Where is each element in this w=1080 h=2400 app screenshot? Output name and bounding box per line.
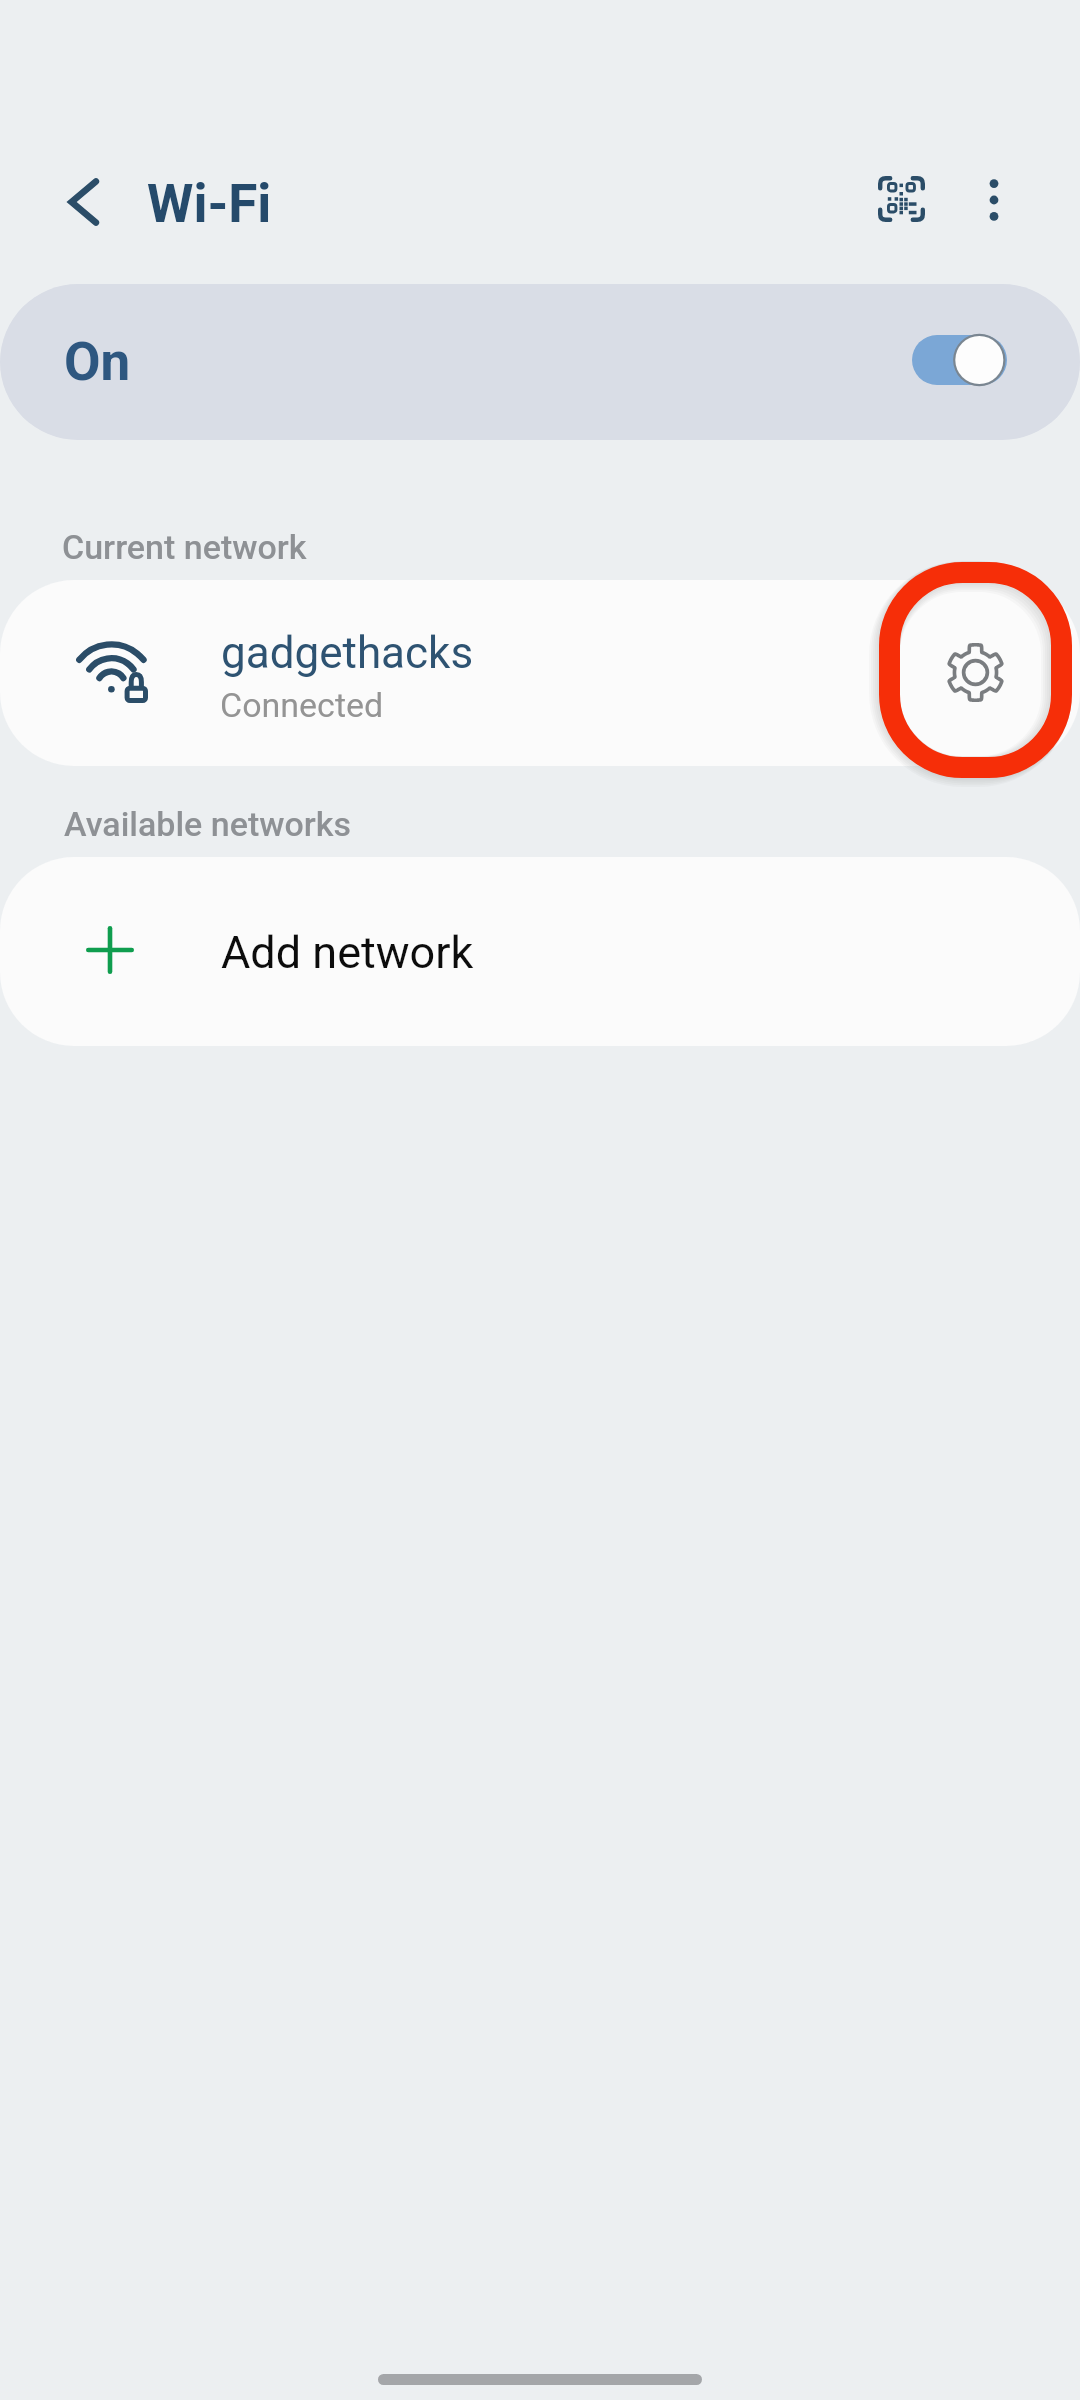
button[interactable]: Back xyxy=(42,160,126,244)
staticText: Add network xyxy=(221,926,474,979)
button[interactable]: On xyxy=(0,284,1080,440)
staticText: gadgethacks xyxy=(221,627,474,679)
staticText: Wi-Fi xyxy=(147,173,272,235)
staticText: Current network xyxy=(62,527,307,567)
staticText: Available networks xyxy=(64,804,351,844)
button[interactable]: Add network xyxy=(0,857,1080,1046)
staticText: On xyxy=(64,331,131,393)
button[interactable]: Scan QR code xyxy=(849,147,953,251)
button[interactable]: gadgethacks xyxy=(0,580,1080,766)
staticText: Connected xyxy=(220,685,384,725)
button[interactable]: More options xyxy=(942,148,1046,252)
button[interactable]: Network settings xyxy=(919,616,1031,728)
